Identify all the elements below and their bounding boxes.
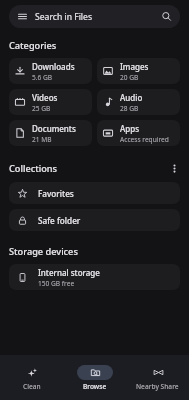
button[interactable]: Safe folder xyxy=(9,209,180,231)
button[interactable]: Downloads xyxy=(9,58,92,84)
staticText: Collections xyxy=(9,162,166,175)
button[interactable]: Audio xyxy=(97,89,180,115)
staticText: Clean xyxy=(23,382,41,391)
button[interactable]: Nearby Share xyxy=(126,362,189,394)
button[interactable]: Clean xyxy=(0,362,63,394)
staticText: 25 GB xyxy=(32,104,51,113)
staticText: Storage devices xyxy=(9,245,182,258)
other: Search xyxy=(161,11,172,22)
other: Menu xyxy=(17,11,28,22)
staticText: Nearby Share xyxy=(136,382,179,391)
staticText: Images xyxy=(120,61,149,72)
staticText: Downloads xyxy=(32,61,75,72)
staticText: Categories xyxy=(9,39,182,52)
staticText: Access required xyxy=(120,135,169,144)
button[interactable]: Apps xyxy=(97,120,180,146)
staticText: Audio xyxy=(120,92,143,103)
staticText: 28 GB xyxy=(120,104,139,113)
staticText: 5.6 GB xyxy=(32,73,53,82)
button[interactable]: Favorites xyxy=(9,182,180,204)
staticText: Favorites xyxy=(38,188,74,199)
staticText: 20 GB xyxy=(120,73,139,82)
staticText: Apps xyxy=(120,123,140,134)
button[interactable]: More options xyxy=(166,160,182,176)
staticText: Videos xyxy=(32,92,58,103)
button[interactable]: Internal storage xyxy=(9,264,180,290)
button[interactable]: Videos xyxy=(9,89,92,115)
button[interactable]: Menu xyxy=(9,5,180,28)
button[interactable]: Browse xyxy=(63,362,126,394)
staticText: Browse xyxy=(83,382,107,391)
staticText: 21 MB xyxy=(32,135,52,144)
staticText: Documents xyxy=(32,123,76,134)
staticText: Search in Files xyxy=(35,11,161,23)
staticText: Internal storage xyxy=(38,267,100,278)
staticText: Safe folder xyxy=(38,215,81,226)
button[interactable]: Documents xyxy=(9,120,92,146)
staticText: 150 GB free xyxy=(38,279,75,288)
button[interactable]: Images xyxy=(97,58,180,84)
